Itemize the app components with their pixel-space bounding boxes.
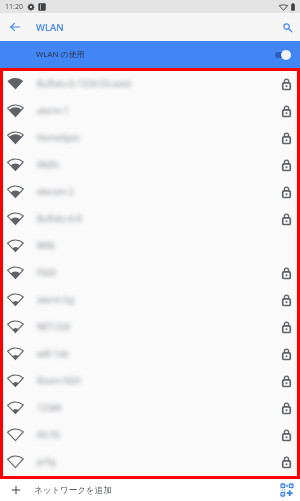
staticText: F660	[37, 267, 56, 279]
staticText: Room-5GH	[37, 375, 81, 387]
staticText: aterm-1	[37, 105, 69, 117]
button[interactable]: elecom-2	[0, 178, 300, 205]
button[interactable]: aterm-5g	[0, 286, 300, 313]
staticText: NET-224	[37, 321, 70, 333]
button[interactable]: 0AJ9s	[0, 151, 300, 178]
staticText: 11:20	[5, 2, 23, 12]
staticText: W06	[37, 240, 55, 252]
button[interactable]: WLAN の使用	[0, 41, 300, 68]
button[interactable]: wifi-1ab	[0, 340, 300, 367]
staticText: Buffalo-A-8	[37, 213, 82, 225]
staticText: pr5g	[37, 456, 56, 468]
button[interactable]: pr5g	[0, 448, 300, 475]
staticText: WLAN	[36, 21, 64, 34]
staticText: Buffalo-G-1234-5G-extd	[37, 78, 131, 90]
staticText: elecom-2	[37, 186, 74, 198]
staticText: 0AJ9s	[37, 159, 59, 171]
button[interactable]: NET-224	[0, 313, 300, 340]
staticText: HomeSpot	[37, 132, 80, 144]
button[interactable]: Back	[0, 13, 30, 41]
staticText: aterm-5g	[37, 294, 74, 306]
button[interactable]: HomeSpot	[0, 124, 300, 151]
staticText: AX-55	[37, 429, 60, 441]
button[interactable]: Search	[274, 13, 300, 41]
button[interactable]: Room-5GH	[0, 367, 300, 394]
button[interactable]: AX-55	[0, 421, 300, 448]
button[interactable]: aterm-1	[0, 97, 300, 124]
staticText: ネットワークを追加	[34, 485, 112, 496]
button[interactable]: F660	[0, 259, 300, 286]
staticText: WLAN の使用	[36, 49, 85, 60]
button[interactable]: Add network with QR code	[274, 479, 300, 501]
staticText: 1234X	[37, 402, 62, 414]
button[interactable]: Buffalo-G-1234-5G-extd	[0, 70, 300, 97]
button[interactable]: W06	[0, 232, 300, 259]
button[interactable]: ネットワークを追加	[0, 479, 274, 501]
button[interactable]: 1234X	[0, 394, 300, 421]
button[interactable]: Buffalo-A-8	[0, 205, 300, 232]
staticText: wifi-1ab	[37, 348, 69, 360]
